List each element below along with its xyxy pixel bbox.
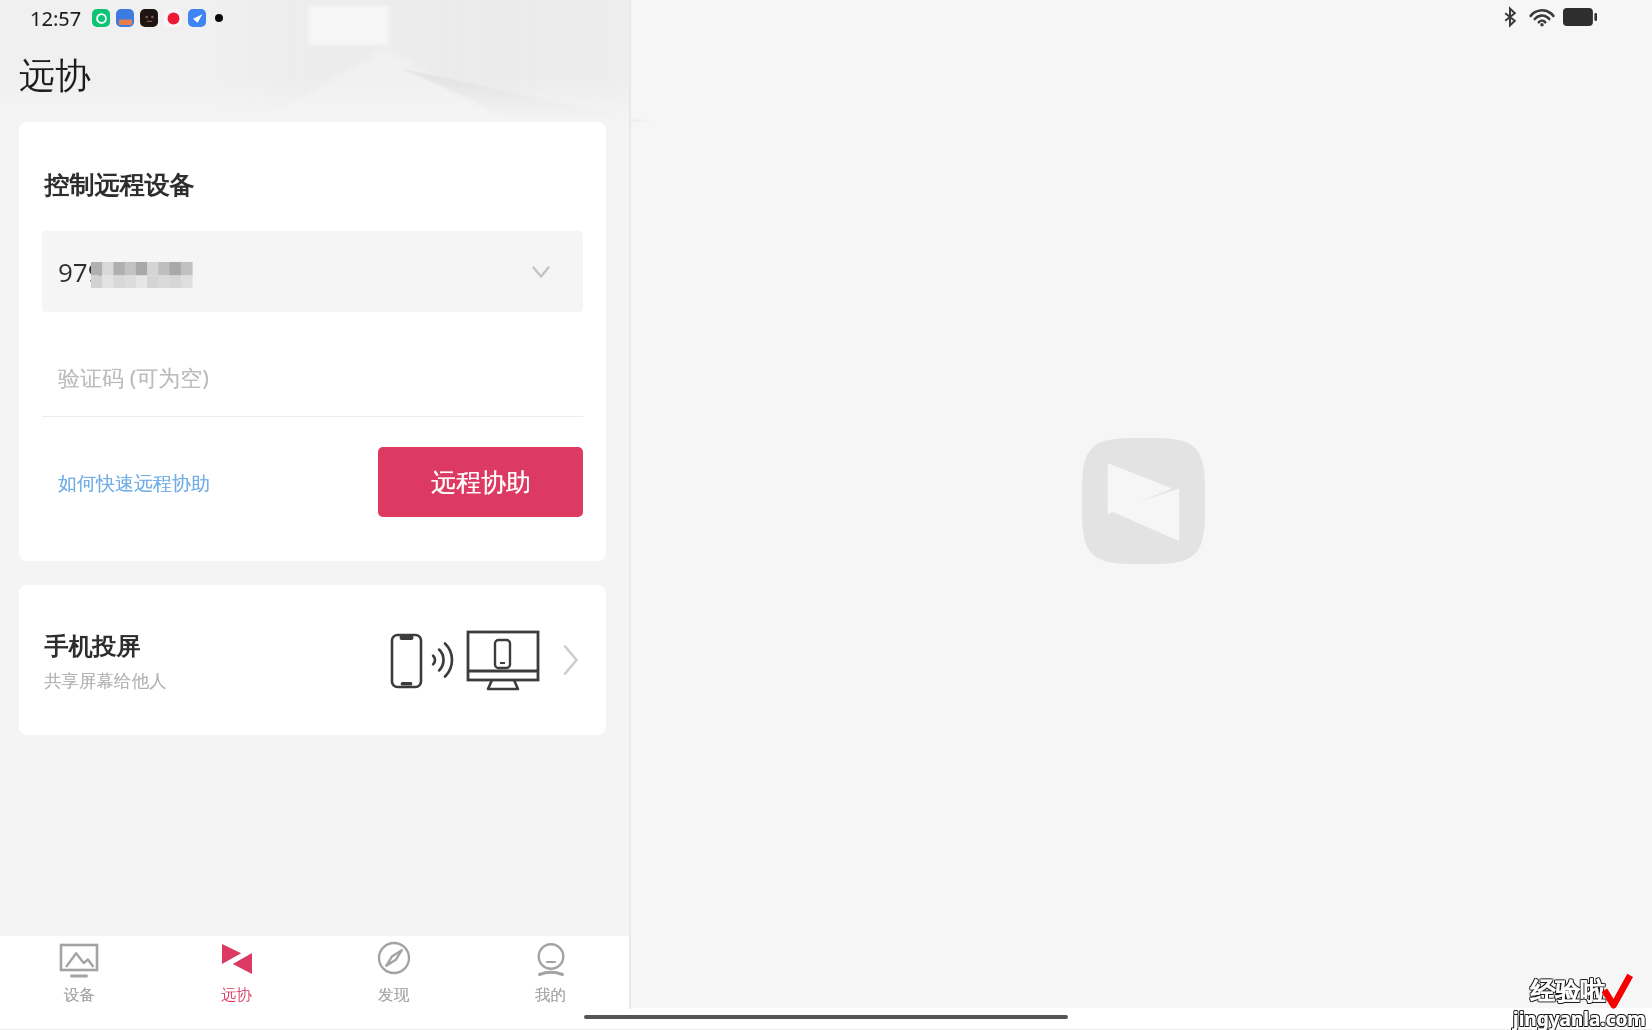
staticText: 经验啦 [1530, 975, 1605, 1006]
staticText: 经验啦 [1529, 977, 1604, 1008]
staticText: 控制远程设备 [44, 170, 194, 201]
staticText: 远程协助 [431, 467, 531, 498]
button[interactable]: 979 [42, 231, 583, 312]
staticText: 经验啦 [1531, 976, 1606, 1007]
button[interactable]: 发现 [315, 936, 472, 1009]
staticText: 经验啦 [1529, 975, 1604, 1006]
staticText: jingyanla.com [1514, 1005, 1647, 1030]
staticText: 经验啦 [1530, 976, 1605, 1007]
staticText: 设备 [64, 985, 95, 1005]
staticText: 经验啦 [1529, 976, 1604, 1007]
other: Wi-Fi [1530, 8, 1554, 27]
staticText: jingyanla.com [1514, 1006, 1647, 1030]
staticText: 经验啦 [1530, 977, 1605, 1008]
staticText: jingyanla.com [1512, 1006, 1645, 1030]
button[interactable]: 远程协助 [378, 447, 583, 517]
button[interactable]: 设备 [0, 936, 158, 1009]
staticText: 远协 [221, 985, 252, 1005]
staticText: 如何快速远程协助 [58, 472, 210, 496]
staticText: 经验啦 [1531, 977, 1606, 1008]
staticText: jingyanla.com [1512, 1005, 1645, 1030]
staticText: 发现 [378, 985, 409, 1005]
staticText: jingyanla.com [1514, 1007, 1647, 1030]
staticText: 验证码 (可为空) [58, 362, 209, 392]
staticText: jingyanla.com [1513, 1007, 1646, 1030]
staticText: jingyanla.com [1513, 1005, 1646, 1030]
staticText: jingyanla.com [1513, 1006, 1646, 1030]
button[interactable]: 如何快速远程协助 [52, 462, 216, 506]
staticText: 共享屏幕给他人 [44, 670, 167, 692]
staticText: jingyanla.com [1512, 1007, 1645, 1030]
button[interactable]: 验证码 (可为空) [42, 337, 583, 417]
staticText: 12:57 [30, 5, 82, 31]
button[interactable]: 远协 [158, 936, 315, 1009]
staticText: 经验啦 [1531, 975, 1606, 1006]
other: Bluetooth [1500, 7, 1520, 27]
staticText: 手机投屏 [44, 632, 140, 662]
staticText: 979 [58, 254, 103, 289]
other: Battery [1563, 8, 1597, 26]
staticText: 远协 [19, 53, 91, 98]
button[interactable]: 手机投屏 [19, 585, 606, 735]
button[interactable]: 我的 [472, 936, 629, 1009]
staticText: 我的 [535, 985, 566, 1005]
